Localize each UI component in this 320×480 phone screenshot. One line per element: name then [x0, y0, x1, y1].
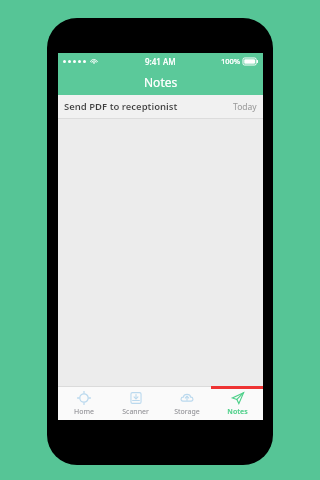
other: Home — [77, 391, 91, 405]
staticText: Storage — [174, 407, 200, 417]
staticText: Send PDF to receptionist — [64, 100, 233, 113]
staticText: Notes — [227, 407, 248, 417]
button[interactable]: Scanner — [110, 387, 161, 420]
other: Storage — [180, 391, 194, 405]
other: Scanner — [129, 391, 143, 405]
staticText: Notes — [144, 74, 178, 90]
staticText: Today — [233, 101, 257, 113]
button[interactable]: Storage — [161, 387, 212, 420]
staticText: Home — [74, 407, 94, 417]
button[interactable]: Home — [58, 387, 110, 420]
staticText: 9:41 AM — [145, 56, 176, 67]
other: Notes — [231, 391, 245, 405]
button[interactable]: Send PDF to receptionist — [58, 95, 263, 118]
staticText: 100% — [221, 56, 241, 66]
staticText: Scanner — [122, 407, 149, 417]
button[interactable]: Notes — [212, 387, 263, 420]
